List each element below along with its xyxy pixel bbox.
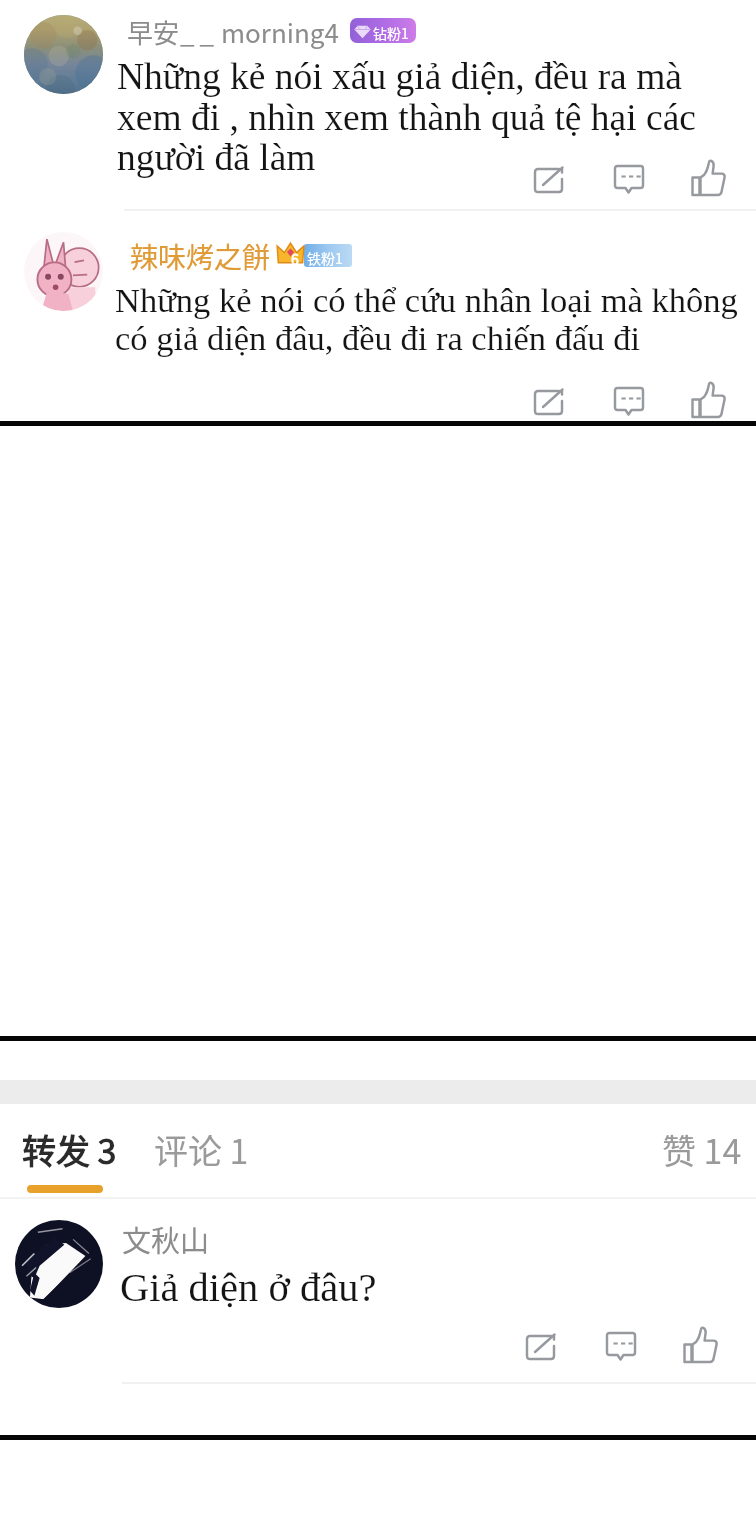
- button[interactable]: Comment: [609, 378, 651, 420]
- staticText: 辣味烤之餅: [130, 236, 271, 277]
- button[interactable]: 转发 3: [14, 1119, 125, 1180]
- button[interactable]: Comment: [601, 1323, 643, 1365]
- staticText: 文秋山: [122, 1218, 210, 1260]
- staticText: 早安: [127, 13, 180, 51]
- staticText: 评论 1: [154, 1125, 249, 1174]
- button[interactable]: Share: [521, 1324, 563, 1366]
- button[interactable]: 评论 1: [146, 1119, 257, 1180]
- button[interactable]: Share: [529, 379, 571, 421]
- staticText: __: [180, 13, 220, 51]
- staticText: Những kẻ nói xấu giả diện, đều ra mà xem…: [117, 56, 696, 178]
- button[interactable]: Comment: [609, 156, 651, 198]
- button[interactable]: Like: [687, 378, 729, 420]
- button[interactable]: Like: [687, 156, 729, 198]
- staticText: Những kẻ nói có thể cứu nhân loại mà khô…: [115, 281, 738, 358]
- staticText: morning4: [221, 13, 339, 51]
- staticText: 转发 3: [22, 1125, 117, 1174]
- button[interactable]: 赞 14: [654, 1119, 750, 1180]
- staticText: 铁粉1: [307, 248, 343, 267]
- staticText: 赞 14: [662, 1125, 742, 1174]
- staticText: Giả diện ở đâu?: [120, 1265, 377, 1310]
- staticText: 6: [291, 249, 299, 269]
- staticText: 钻粉1: [373, 23, 409, 43]
- button[interactable]: Like: [679, 1323, 721, 1365]
- button[interactable]: Share: [529, 157, 571, 199]
